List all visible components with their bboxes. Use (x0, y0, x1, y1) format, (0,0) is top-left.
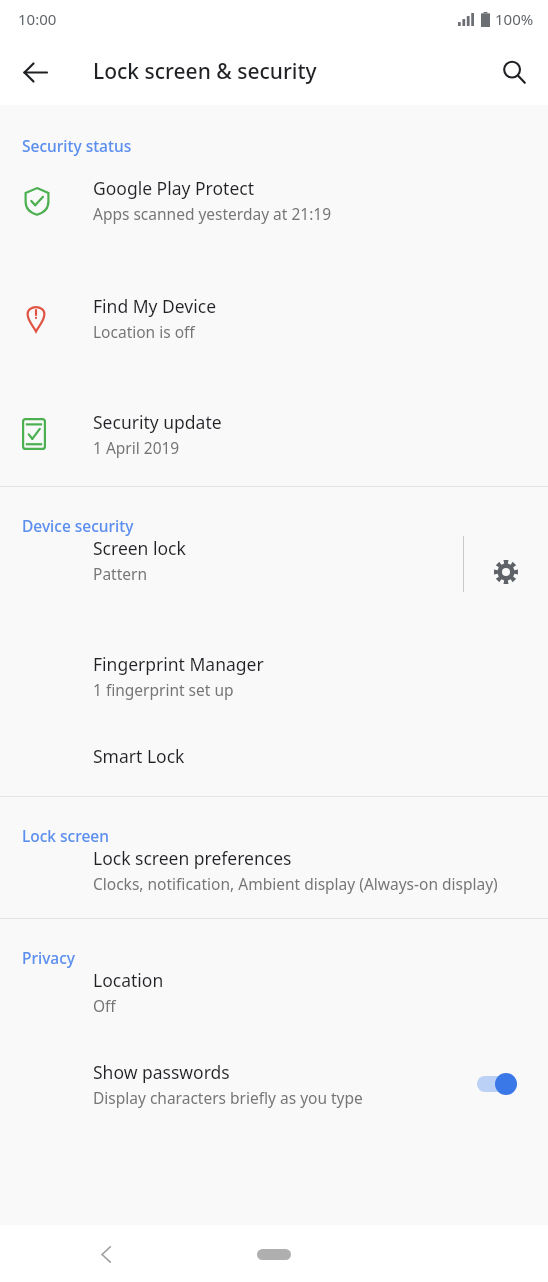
button[interactable]: Screen lock settings (464, 536, 548, 608)
button[interactable]: Back (82, 1230, 130, 1278)
button[interactable]: Google Play Protect (0, 176, 548, 224)
button[interactable]: Show passwords (0, 1060, 548, 1108)
button[interactable]: Fingerprint Manager (0, 652, 548, 700)
staticText: Location (93, 968, 164, 992)
staticText: Security status (22, 135, 132, 156)
button[interactable]: Home (250, 1236, 298, 1272)
staticText: Lock screen (22, 825, 109, 846)
staticText: Google Play Protect (93, 176, 254, 200)
button[interactable]: Security update (0, 410, 548, 458)
button[interactable]: Location (0, 968, 548, 1016)
staticText: Off (93, 995, 116, 1016)
staticText: Apps scanned yesterday at 21:19 (93, 203, 332, 224)
staticText: Fingerprint Manager (93, 652, 264, 676)
staticText: Display characters briefly as you type (93, 1087, 363, 1108)
button[interactable]: Find My Device (0, 294, 548, 342)
staticText: Clocks, notification, Ambient display (A… (93, 873, 498, 894)
staticText: Security update (93, 410, 222, 434)
staticText: Show passwords (93, 1060, 230, 1084)
staticText: Privacy (22, 947, 76, 968)
staticText: 10:00 (18, 9, 57, 29)
button[interactable]: Screen lock (0, 536, 463, 608)
button[interactable]: Lock screen preferences (0, 846, 548, 894)
staticText: Find My Device (93, 294, 217, 318)
staticText: 1 fingerprint set up (93, 679, 234, 700)
button[interactable]: Search (488, 46, 540, 98)
staticText: Screen lock (93, 536, 186, 560)
staticText: Smart Lock (93, 744, 185, 768)
button[interactable]: Smart Lock (0, 744, 548, 768)
staticText: Device security (22, 515, 134, 536)
staticText: Pattern (93, 563, 147, 584)
staticText: Lock screen & security (93, 57, 317, 86)
staticText: 1 April 2019 (93, 437, 180, 458)
staticText: Lock screen preferences (93, 846, 292, 870)
staticText: 100% (495, 9, 534, 29)
button[interactable]: Back (8, 45, 62, 99)
staticText: Location is off (93, 321, 195, 342)
